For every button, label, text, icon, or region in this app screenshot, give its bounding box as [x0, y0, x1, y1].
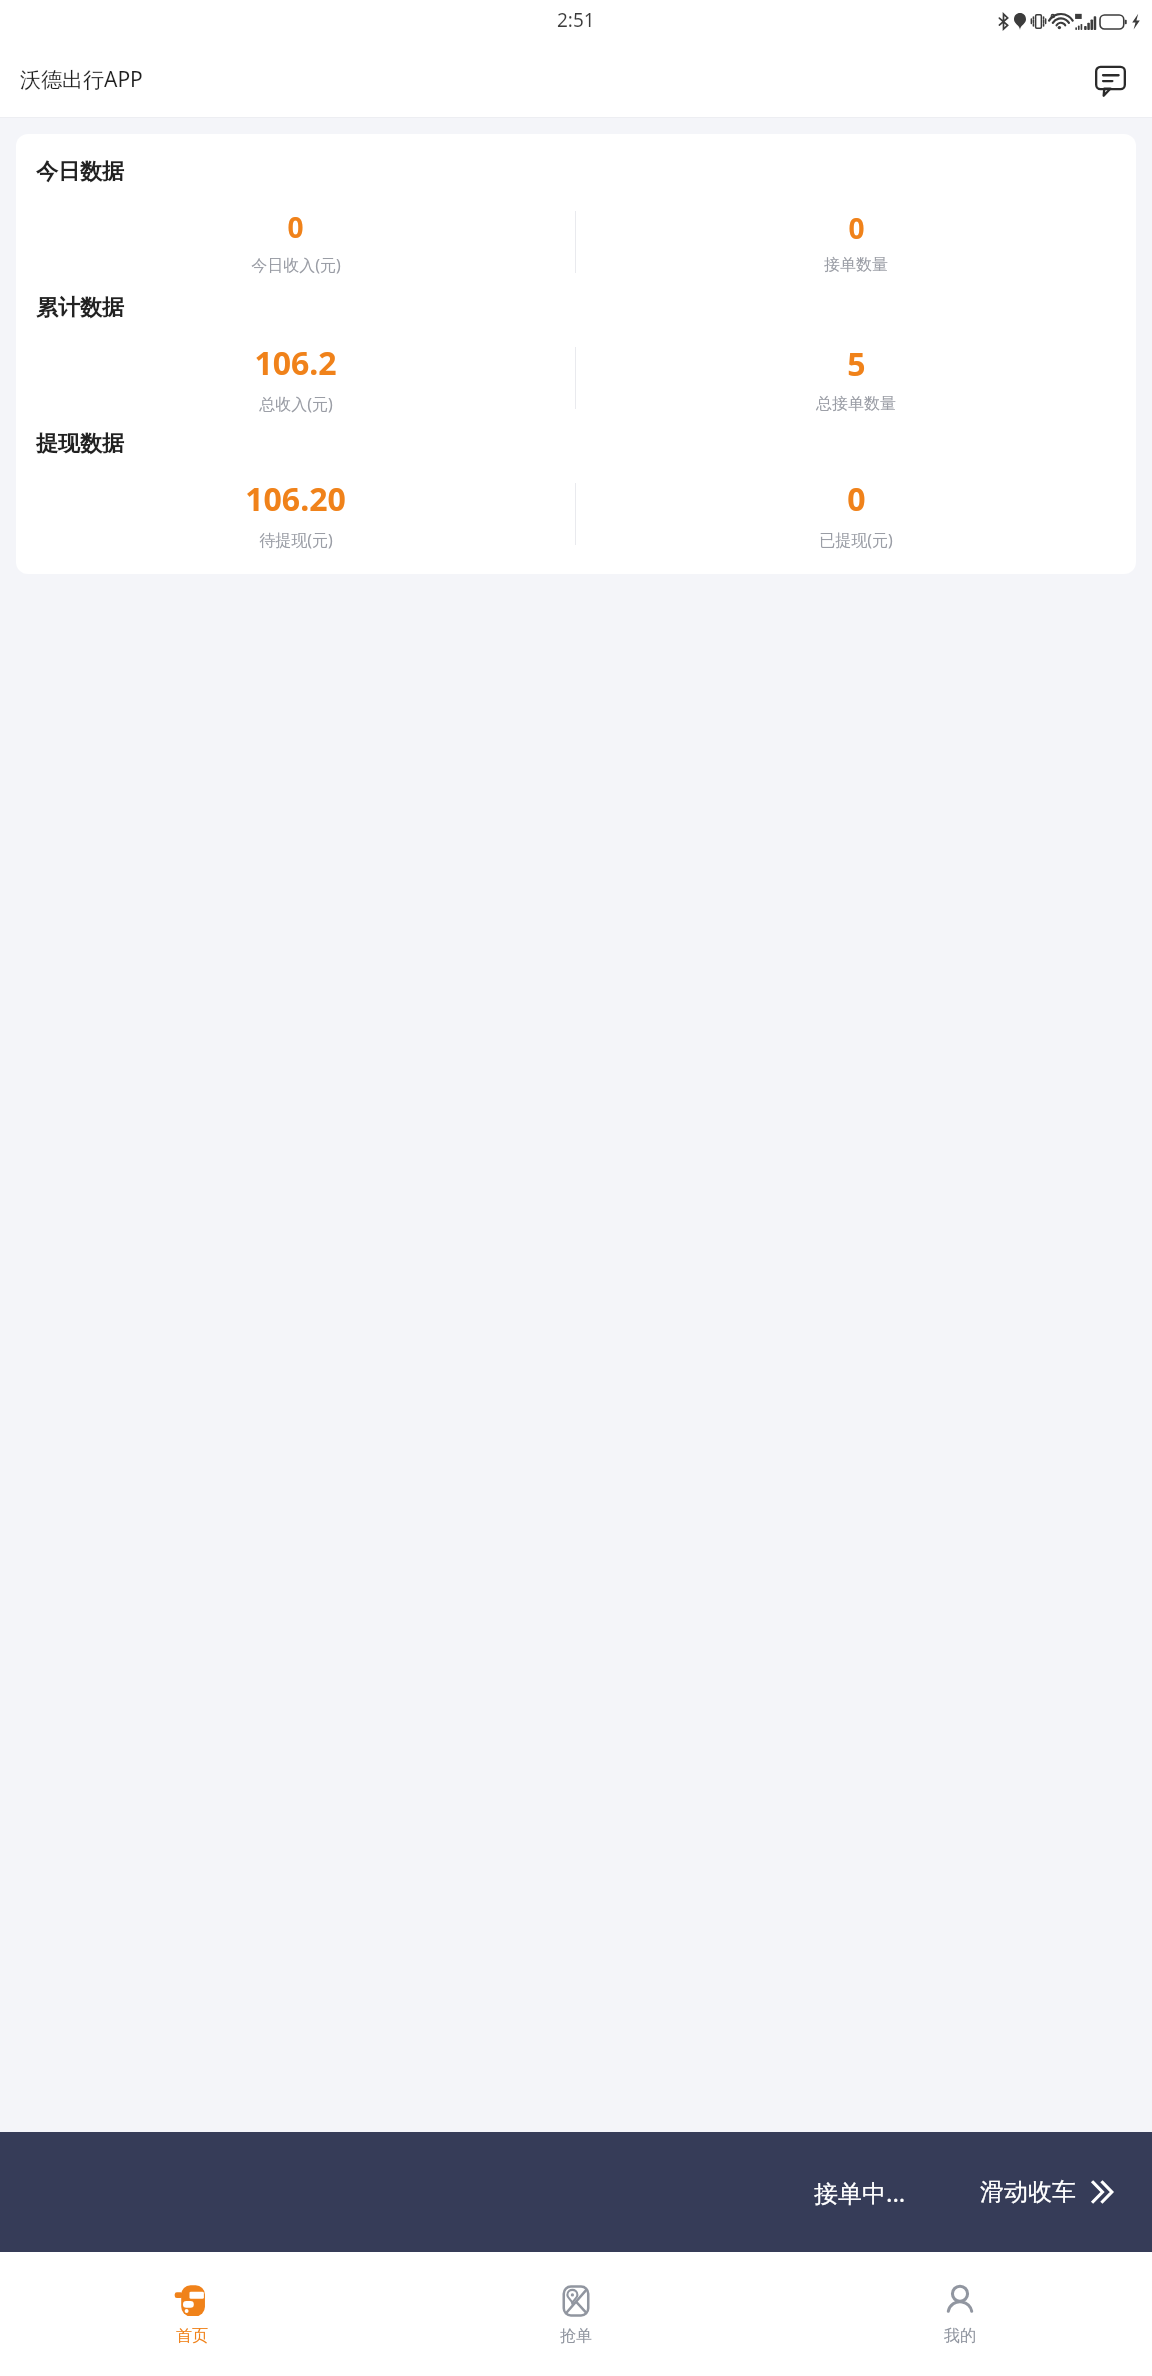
button[interactable]: 106.20 [16, 477, 575, 551]
staticText: 今日收入(元) [251, 254, 341, 276]
staticText: 总接单数量 [816, 394, 896, 414]
button[interactable]: 106.2 [16, 341, 575, 415]
staticText: 接单数量 [824, 255, 888, 275]
button[interactable]: 我的 [768, 2252, 1152, 2376]
staticText: 提现数据 [36, 430, 124, 458]
staticText: 待提现(元) [259, 529, 333, 551]
staticText: 滑动收车 [980, 2177, 1076, 2207]
staticText: 抢单 [560, 2326, 592, 2346]
button[interactable]: Messages [1086, 56, 1134, 104]
button[interactable]: 首页 [0, 2252, 384, 2376]
staticText: 106.20 [245, 477, 346, 521]
button[interactable]: 接单中... [0, 2132, 1152, 2252]
staticText: 5 [847, 342, 866, 386]
staticText: 0 [847, 477, 866, 521]
staticText: 我的 [944, 2326, 976, 2346]
staticText: 106.2 [254, 341, 337, 385]
staticText: 沃德出行APP [20, 65, 143, 94]
button[interactable]: 0 [16, 208, 575, 276]
staticText: 2:51 [557, 7, 595, 33]
button[interactable]: 0 [576, 477, 1136, 551]
button[interactable]: 抢单 [384, 2252, 768, 2376]
staticText: 已提现(元) [819, 529, 893, 551]
staticText: 接单中... [814, 2176, 906, 2209]
staticText: 今日数据 [36, 158, 124, 186]
staticText: 首页 [176, 2326, 208, 2346]
staticText: 0 [848, 209, 865, 247]
staticText: 0 [287, 208, 304, 246]
button[interactable]: 0 [576, 209, 1136, 275]
staticText: 总收入(元) [259, 393, 333, 415]
button[interactable]: 5 [576, 342, 1136, 414]
staticText: 累计数据 [36, 294, 124, 322]
